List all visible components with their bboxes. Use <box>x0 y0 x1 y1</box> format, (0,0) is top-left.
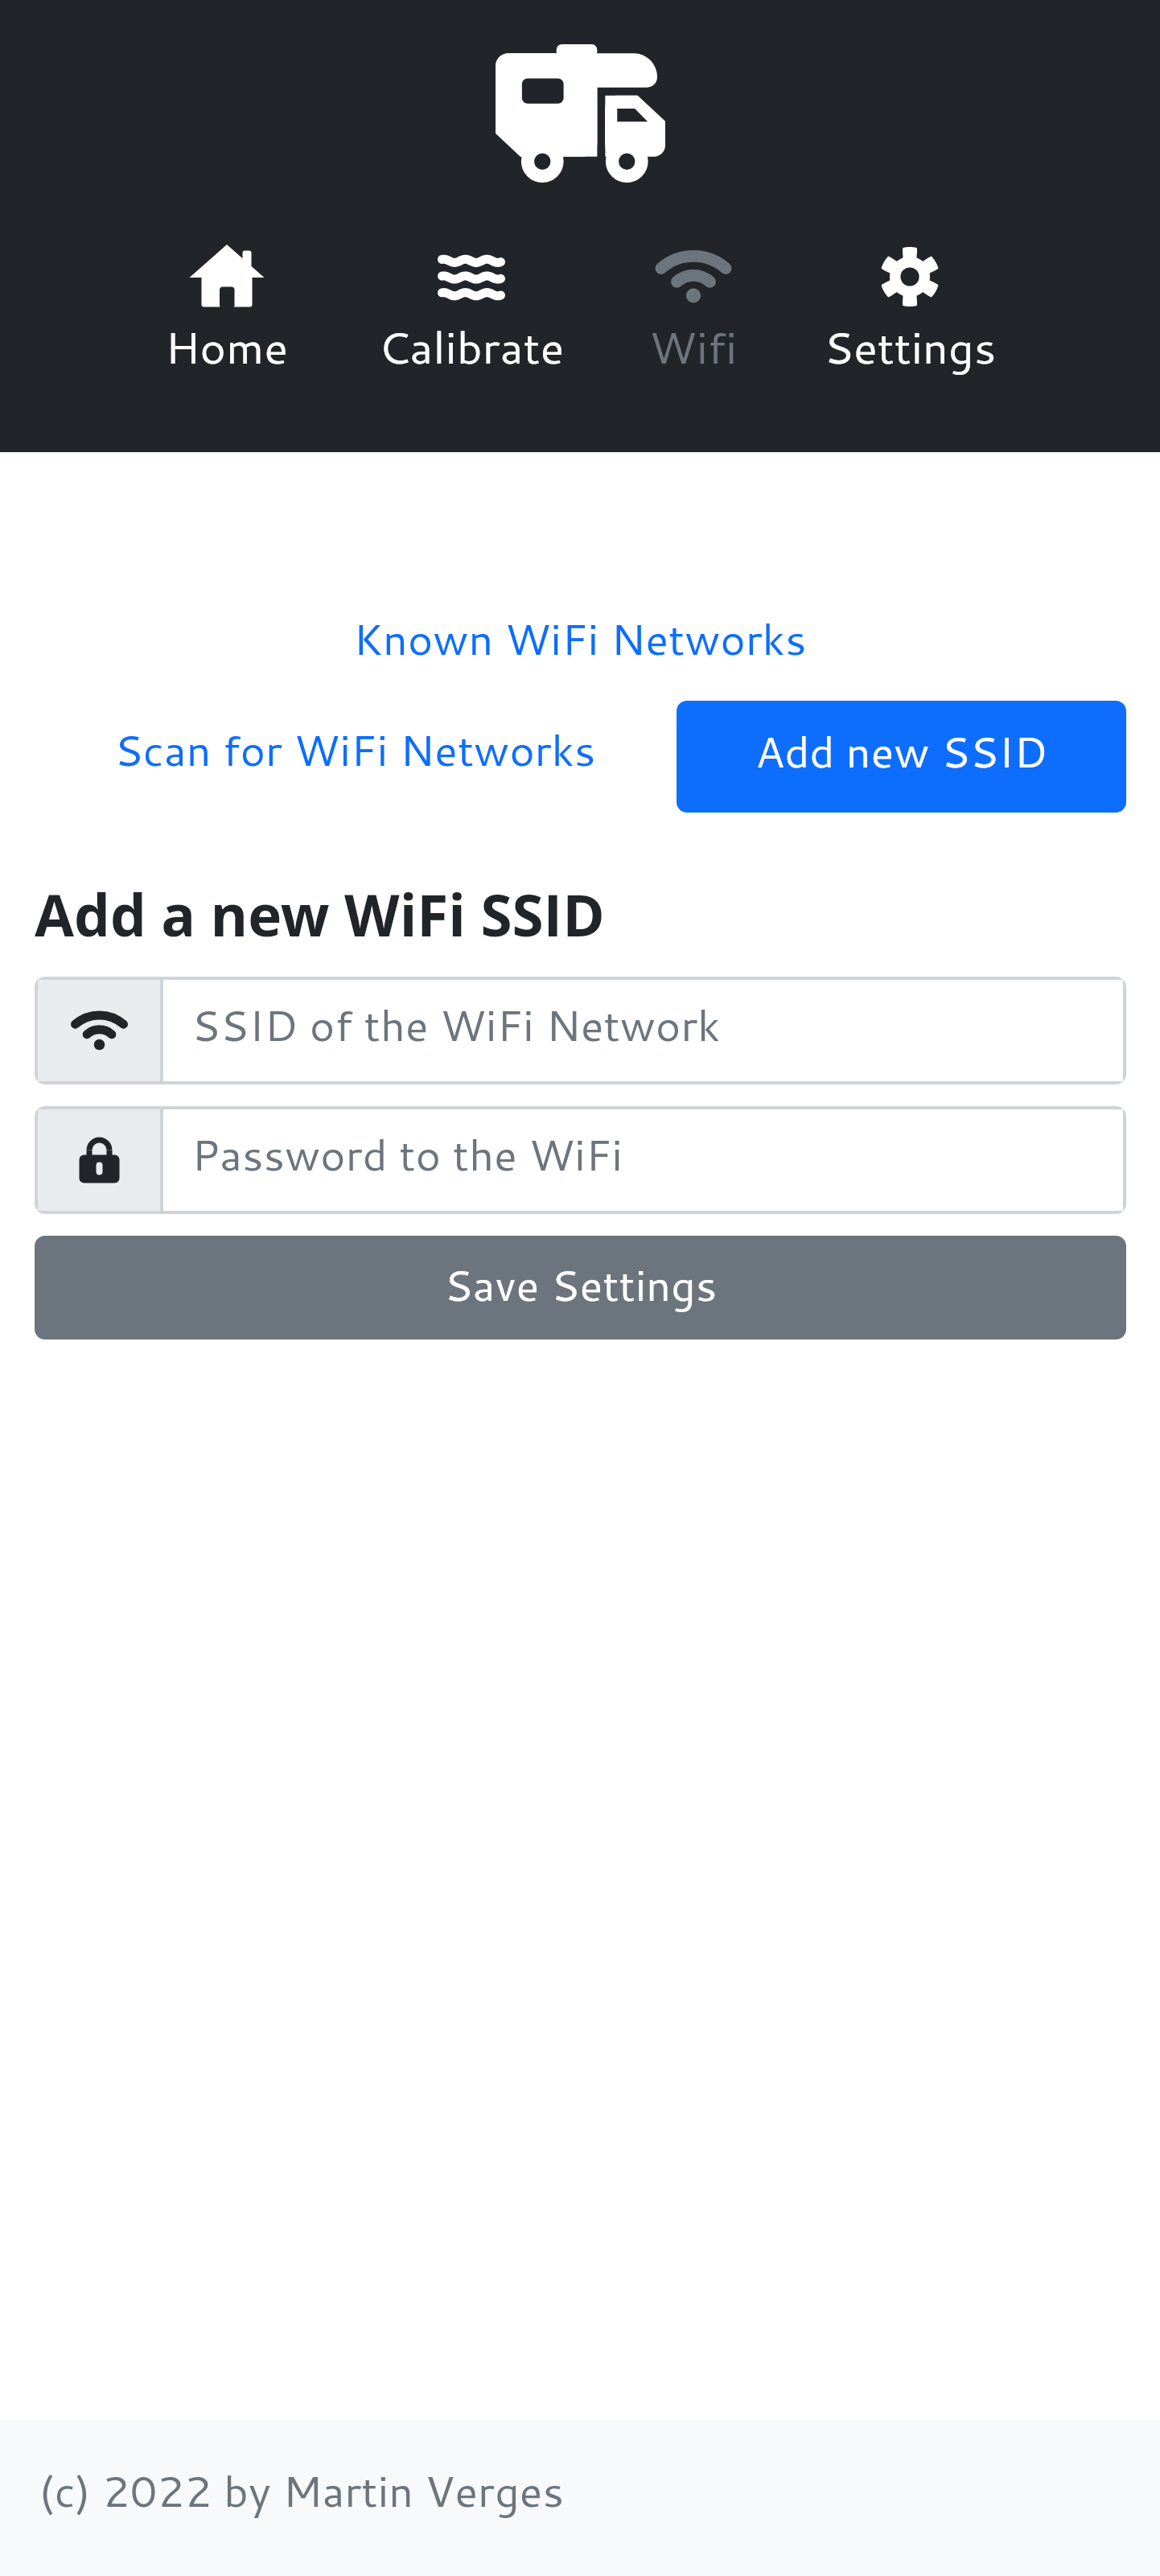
button[interactable]: Calibrate <box>376 241 566 378</box>
button[interactable]: Home <box>132 241 322 378</box>
staticText: Add a new WiFi SSID <box>35 875 605 952</box>
staticText: Known WiFi Networks <box>353 607 807 668</box>
staticText: Calibrate <box>378 315 565 378</box>
button[interactable]: Scan for WiFi Networks <box>114 718 596 779</box>
staticText: (c) 2022 by Martin Verges <box>39 2459 564 2520</box>
button[interactable]: Add new SSID <box>677 701 1126 813</box>
staticText: Wifi <box>649 315 738 378</box>
button[interactable]: Camper van home <box>496 44 664 180</box>
staticText: Save Settings <box>444 1253 718 1315</box>
button[interactable]: Known WiFi Networks <box>0 607 1160 668</box>
staticText: Scan for WiFi Networks <box>114 718 596 779</box>
staticText: Add new SSID <box>755 720 1048 781</box>
staticText: Password to the WiFi <box>191 1123 623 1184</box>
button[interactable]: Settings <box>815 241 1005 378</box>
button[interactable]: Password to the WiFi <box>35 1106 1126 1214</box>
button[interactable]: SSID of the WiFi Network <box>35 977 1126 1084</box>
staticText: Home <box>165 315 289 378</box>
button[interactable]: Save Settings <box>35 1236 1126 1339</box>
staticText: SSID of the WiFi Network <box>191 994 721 1055</box>
button[interactable]: Wifi <box>599 241 788 378</box>
staticText: Settings <box>824 315 997 378</box>
